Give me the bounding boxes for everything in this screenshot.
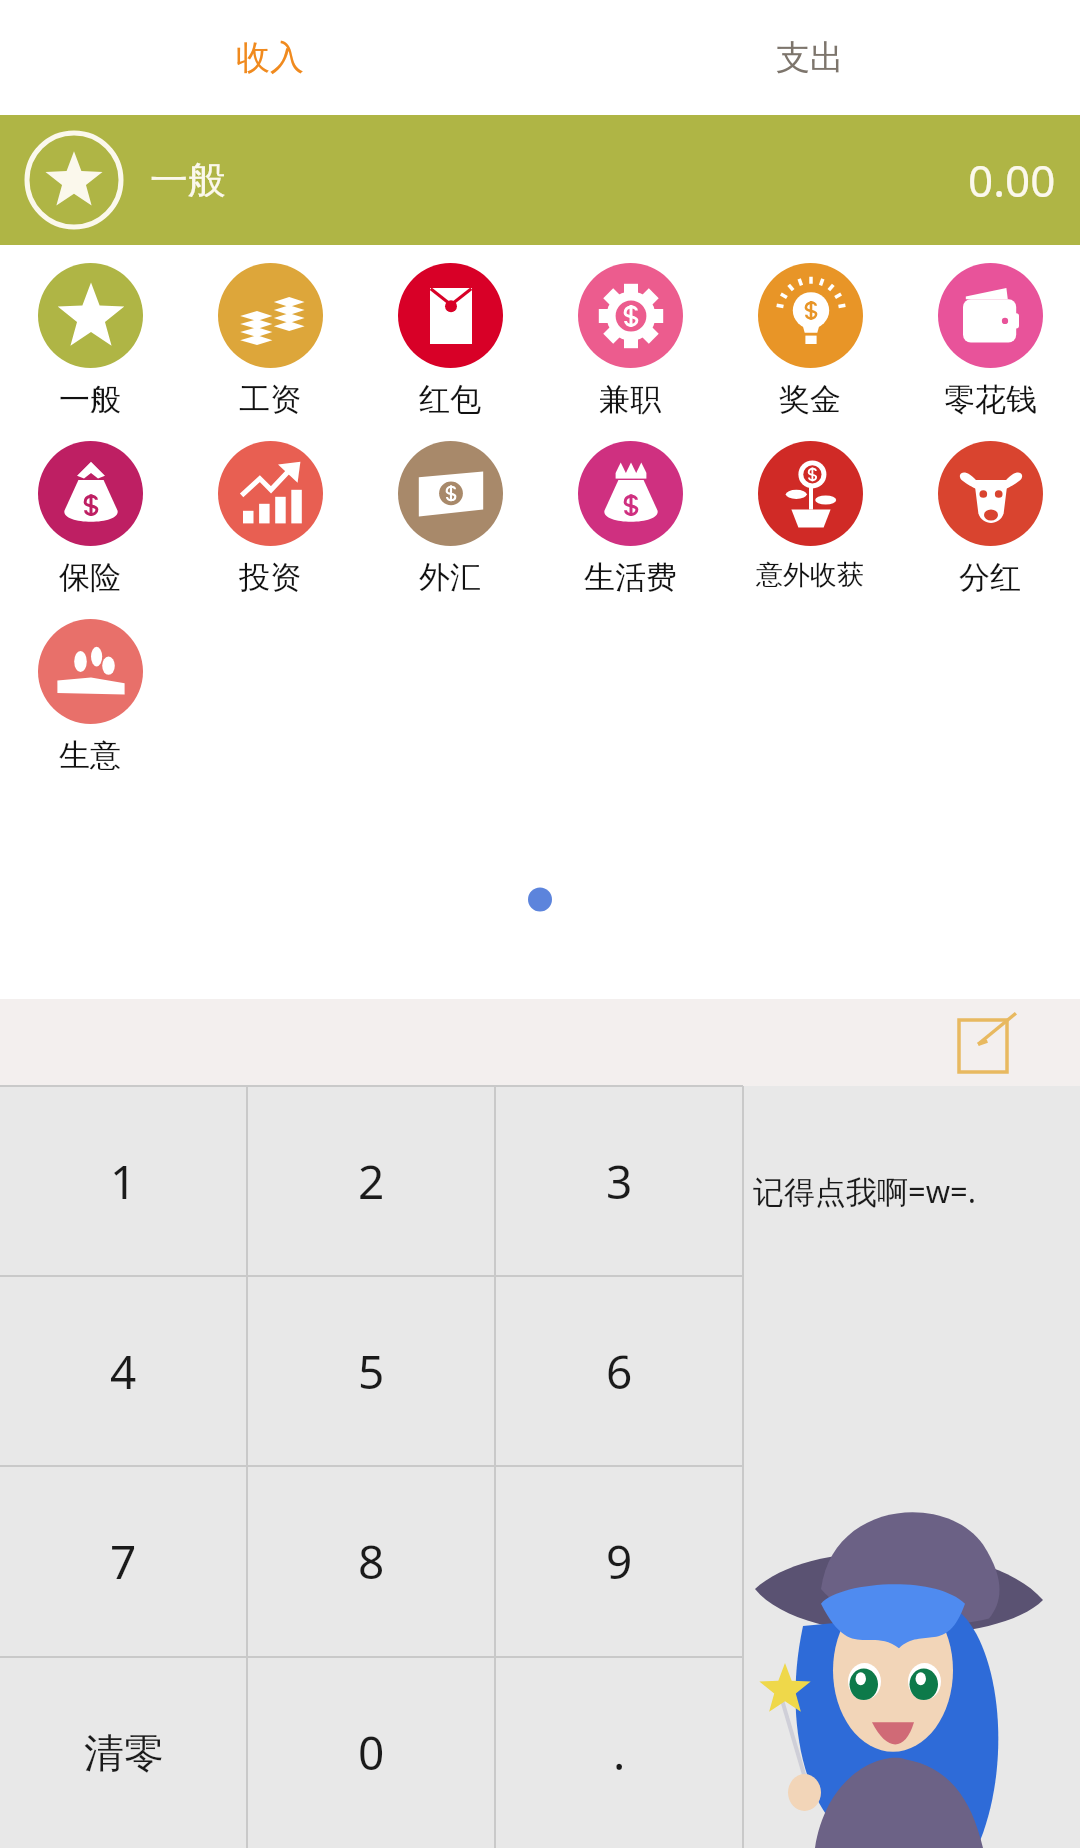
staticText: 收入: [236, 36, 304, 79]
staticText: 一般: [150, 156, 226, 204]
staticText: 一般: [59, 380, 121, 419]
button[interactable]: 工资: [180, 263, 360, 419]
staticText: 投资: [239, 558, 301, 597]
staticText: .: [613, 1721, 626, 1784]
button[interactable]: 支出: [540, 0, 1080, 115]
button[interactable]: 零花钱: [900, 263, 1080, 419]
button[interactable]: 7: [0, 1466, 247, 1657]
staticText: 分红: [959, 558, 1021, 597]
staticText: 0.00: [968, 150, 1056, 210]
button[interactable]: 清零: [0, 1657, 247, 1848]
button[interactable]: 0: [247, 1657, 495, 1848]
button[interactable]: 5: [247, 1276, 495, 1466]
button[interactable]: 奖金: [720, 263, 900, 419]
staticText: 7: [110, 1530, 137, 1593]
staticText: 红包: [419, 380, 481, 419]
button[interactable]: 生活费: [540, 441, 720, 597]
button[interactable]: 6: [495, 1276, 743, 1466]
staticText: 1: [110, 1150, 137, 1213]
staticText: 支出: [776, 36, 844, 79]
staticText: 8: [358, 1530, 385, 1593]
staticText: 零花钱: [944, 380, 1037, 419]
staticText: 兼职: [599, 380, 661, 419]
button[interactable]: 保险: [0, 441, 180, 597]
button[interactable]: 生意: [0, 619, 180, 775]
button[interactable]: 3: [495, 1086, 743, 1276]
button[interactable]: 兼职: [540, 263, 720, 419]
staticText: 清零: [84, 1728, 164, 1778]
button[interactable]: 外汇: [360, 441, 540, 597]
staticText: 外汇: [419, 558, 481, 597]
staticText: 4: [110, 1340, 137, 1403]
button[interactable]: 1: [0, 1086, 247, 1276]
staticText: 0: [358, 1721, 385, 1784]
button[interactable]: 一般: [0, 263, 180, 419]
button[interactable]: 8: [247, 1466, 495, 1657]
button[interactable]: 意外收获: [720, 441, 900, 592]
staticText: 生意: [59, 736, 121, 775]
button[interactable]: 9: [495, 1466, 743, 1657]
staticText: 6: [606, 1340, 633, 1403]
button[interactable]: 红包: [360, 263, 540, 419]
button[interactable]: 一般: [0, 115, 1080, 245]
staticText: 3: [606, 1150, 633, 1213]
staticText: 奖金: [779, 380, 841, 419]
button[interactable]: 分红: [900, 441, 1080, 597]
button[interactable]: 收入: [0, 0, 540, 115]
button[interactable]: 投资: [180, 441, 360, 597]
staticText: 记得点我啊=w=.: [753, 1170, 977, 1212]
staticText: 生活费: [584, 558, 677, 597]
button[interactable]: Edit note: [951, 1006, 1025, 1080]
staticText: 意外收获: [756, 558, 864, 592]
button[interactable]: 4: [0, 1276, 247, 1466]
button[interactable]: .: [495, 1657, 743, 1848]
button[interactable]: 记得点我啊=w=.: [743, 1086, 1080, 1848]
button[interactable]: 2: [247, 1086, 495, 1276]
staticText: 9: [606, 1530, 633, 1593]
staticText: 工资: [239, 380, 301, 419]
staticText: 2: [358, 1150, 385, 1213]
staticText: 保险: [59, 558, 121, 597]
staticText: 5: [358, 1340, 385, 1403]
